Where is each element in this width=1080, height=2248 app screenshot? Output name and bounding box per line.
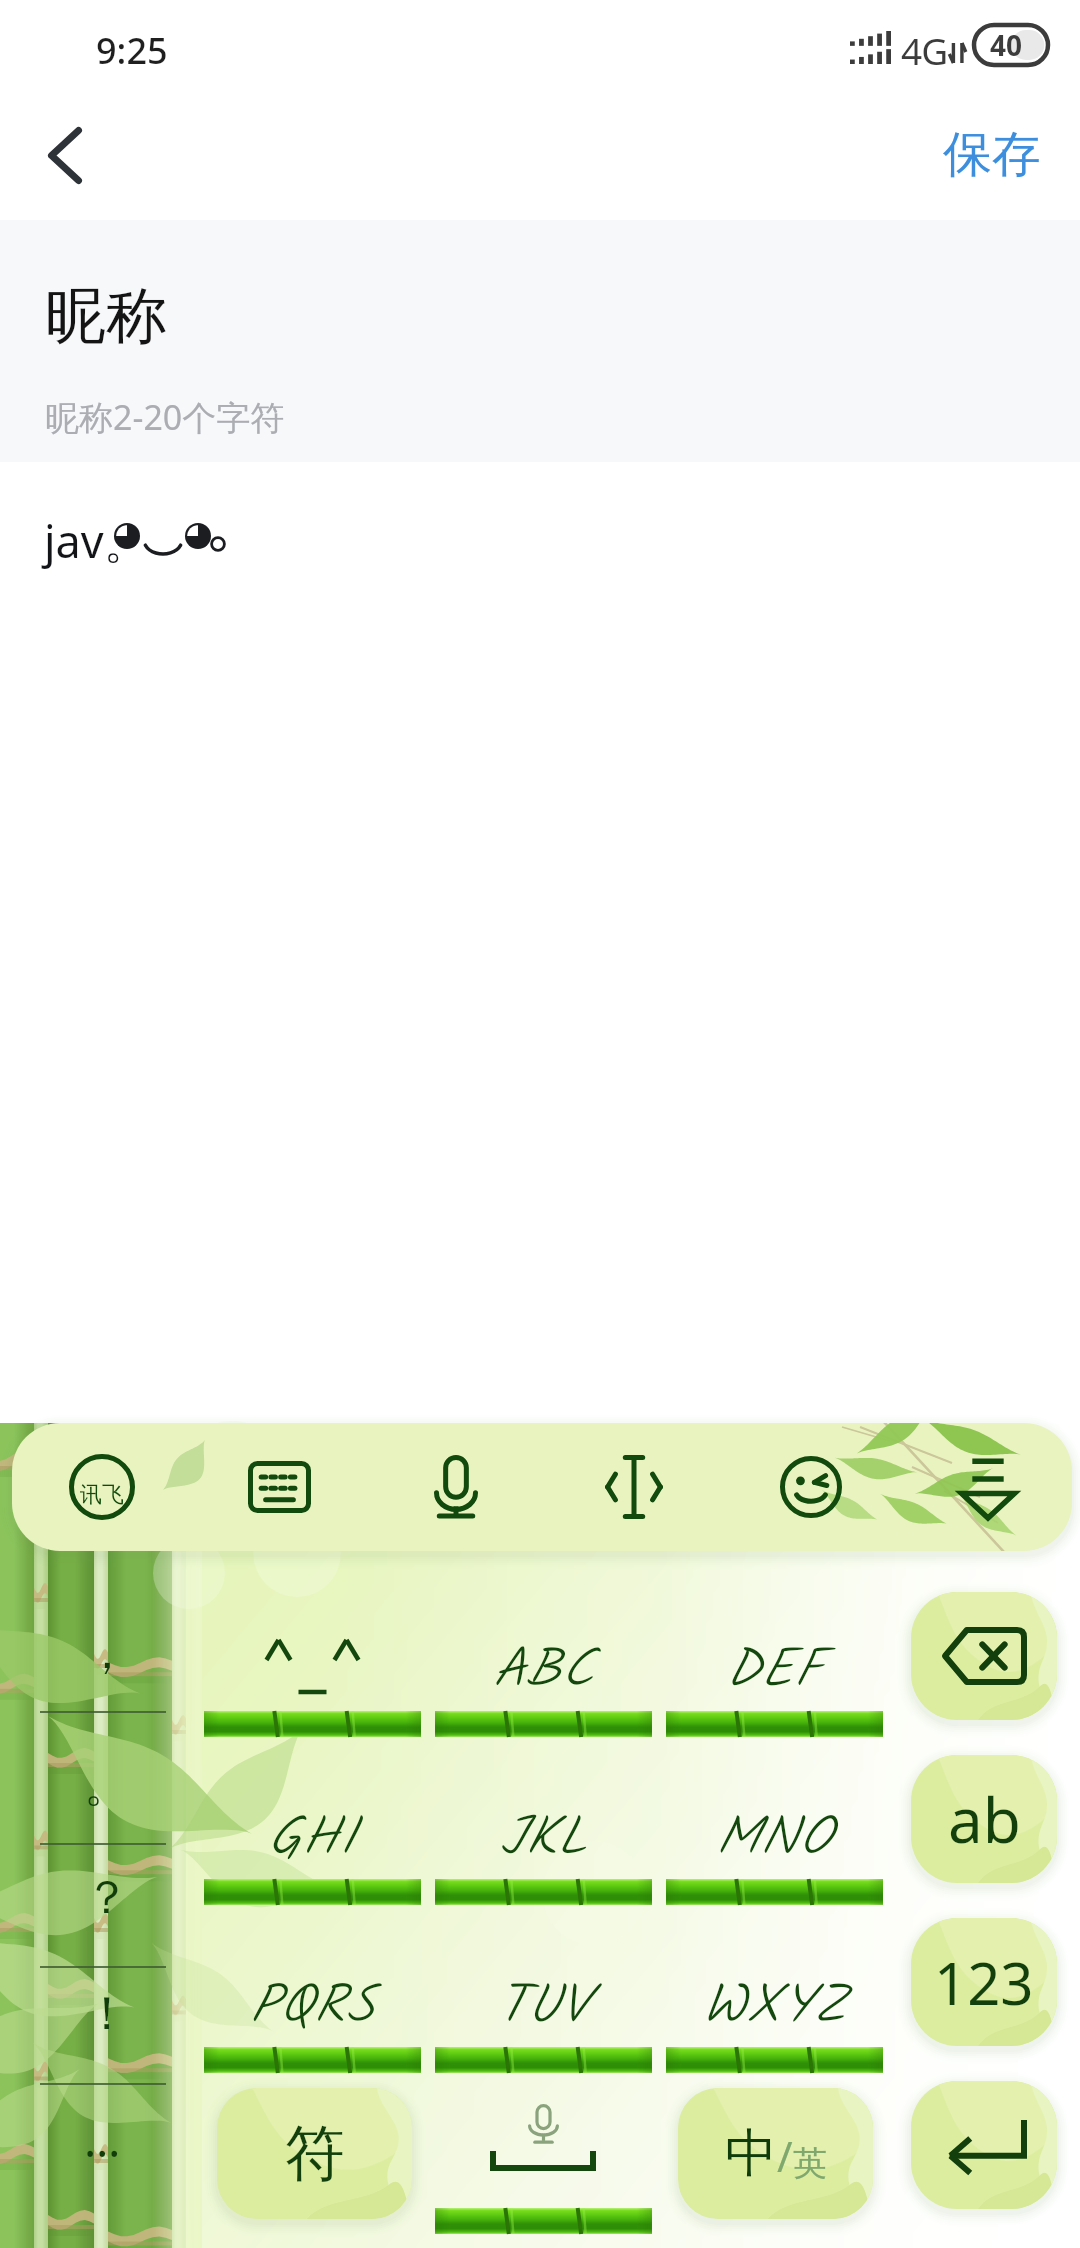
button[interactable]: MNO [666, 1761, 883, 1899]
button[interactable] [204, 1593, 421, 1731]
button[interactable]: 中 [678, 2088, 873, 2219]
staticText: TUV [498, 1964, 590, 2052]
button[interactable]: Keyboard layout [227, 1423, 331, 1551]
button[interactable]: Space [435, 2088, 652, 2219]
staticText: DEF [726, 1628, 823, 1716]
button[interactable]: Backspace [911, 1592, 1057, 1720]
staticText: 123 [934, 1943, 1034, 2022]
button[interactable]: Back [17, 107, 113, 203]
staticText: PQRS [250, 1964, 375, 2052]
staticText: ABC [493, 1628, 594, 1716]
button[interactable]: PQRS [204, 1929, 421, 2067]
button[interactable]: DEF [666, 1593, 883, 1731]
button[interactable]: JKL [435, 1761, 652, 1899]
button[interactable]: ab [911, 1755, 1057, 1883]
button[interactable]: Voice input [404, 1423, 508, 1551]
staticText: 中 [725, 2121, 777, 2187]
staticText: / [777, 2127, 793, 2184]
staticText: 40 [990, 26, 1023, 64]
button[interactable]: iFlytek input method [50, 1423, 154, 1551]
staticText: ab [948, 1777, 1021, 1861]
button[interactable]: Hide keyboard [936, 1423, 1040, 1551]
staticText: 讯飞 [80, 1481, 124, 1509]
staticText: 4G [901, 25, 948, 75]
button[interactable]: Emoji [759, 1423, 863, 1551]
button[interactable]: 保存 [929, 108, 1055, 202]
button[interactable]: ， [0, 1560, 196, 1712]
button[interactable]: ！ [0, 1967, 196, 2084]
staticText: GHI [268, 1796, 357, 1884]
staticText: 英 [793, 2142, 827, 2185]
staticText: 昵称2-20个字符 [45, 394, 285, 440]
button[interactable]: ？ [0, 1844, 196, 1967]
staticText: 。 [84, 1757, 130, 1815]
button[interactable]: 。 [0, 1712, 196, 1844]
staticText: ？ [84, 1869, 130, 1927]
button[interactable]: 符 [217, 2088, 412, 2219]
staticText: 保存 [943, 124, 1041, 186]
button[interactable]: … [0, 2084, 196, 2248]
button[interactable]: Enter [911, 2081, 1057, 2209]
staticText: WXYZ [703, 1964, 847, 2052]
staticText: 9:25 [96, 26, 168, 75]
staticText: 昵称 [45, 278, 167, 355]
staticText: JKL [500, 1796, 588, 1884]
staticText: ， [84, 1624, 130, 1682]
staticText: jav。 [44, 510, 149, 571]
button[interactable]: Move cursor [582, 1423, 686, 1551]
staticText: 符 [285, 2116, 345, 2192]
button[interactable]: TUV [435, 1929, 652, 2067]
staticText: MNO [716, 1796, 833, 1884]
staticText: … [84, 2108, 121, 2171]
button[interactable]: ABC [435, 1593, 652, 1731]
staticText: ！ [84, 1985, 130, 2043]
button[interactable]: WXYZ [666, 1929, 883, 2067]
button[interactable]: 123 [911, 1918, 1057, 2046]
button[interactable]: GHI [204, 1761, 421, 1899]
